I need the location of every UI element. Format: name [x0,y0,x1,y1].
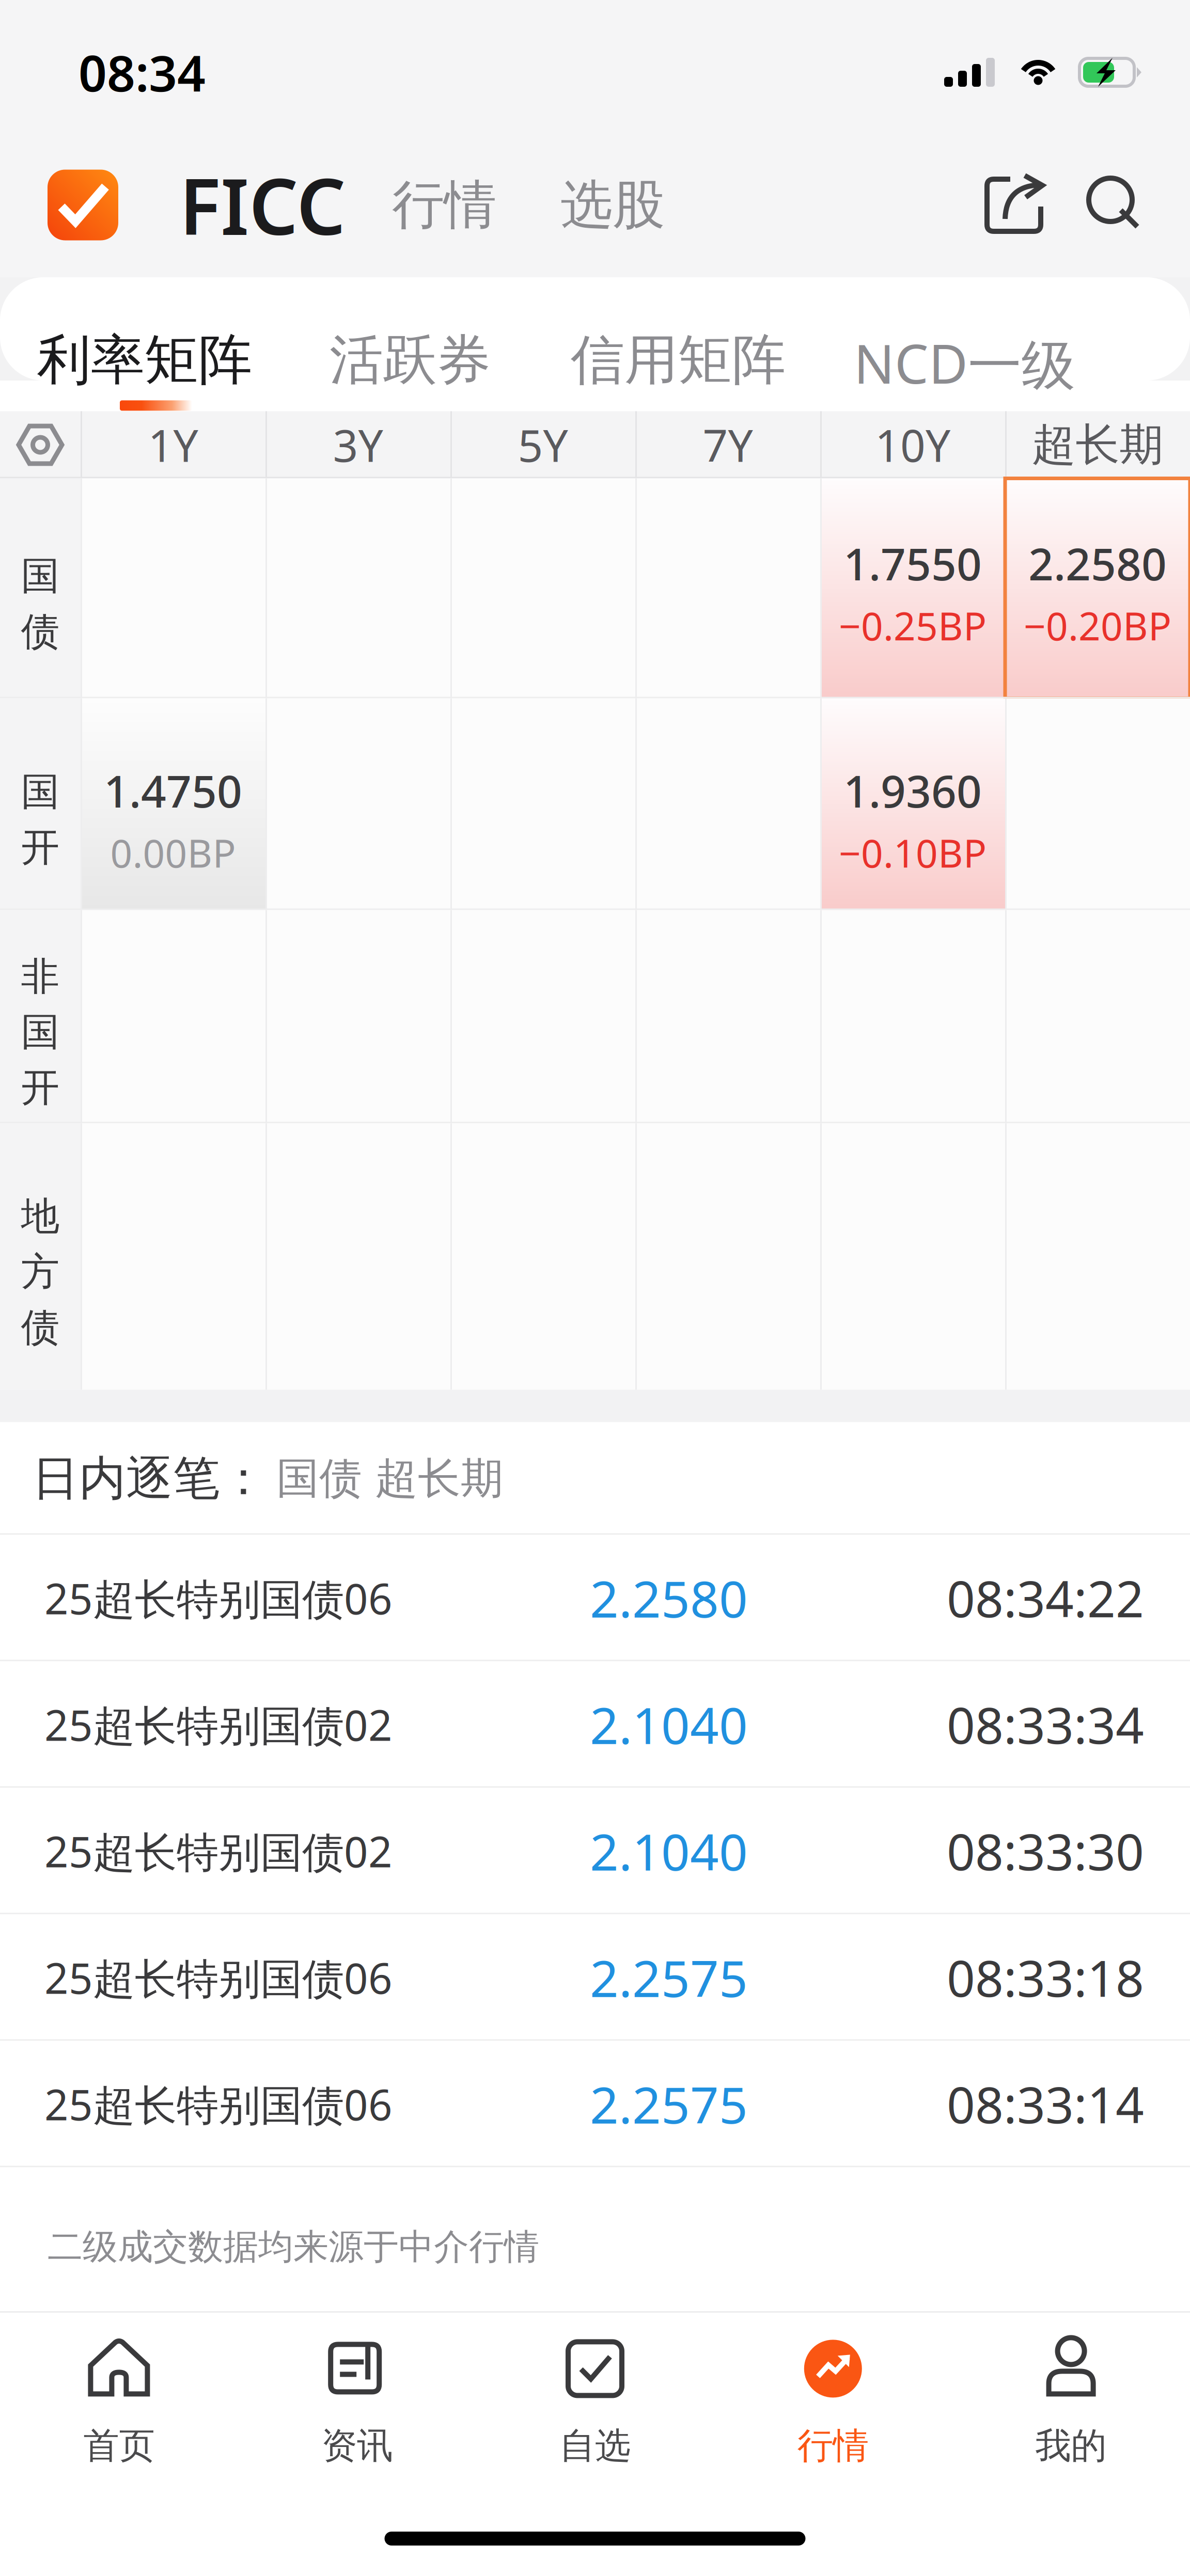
button[interactable]: 自选 [476,2311,714,2469]
staticText: −0.10BP [839,827,987,878]
staticText: 超长期 [1032,418,1163,472]
staticText: 信用矩阵 [571,327,786,393]
staticText: 25超长特别国债06 [44,1950,393,2005]
staticText: 国 [21,768,60,816]
button[interactable]: 资讯 [238,2311,476,2469]
staticText: 25超长特别国债06 [44,2076,393,2132]
staticText: 自选 [559,2424,631,2468]
staticText: 2.1040 [590,1691,748,1758]
staticText: 开 [21,1064,60,1111]
staticText: 方 [21,1248,60,1296]
staticText: 非 [21,953,60,1000]
staticText: 08:34:22 [947,1565,1144,1631]
button[interactable]: 25超长特别国债06 [0,1535,1190,1661]
staticText: 5Y [518,416,568,474]
staticText: 国 [21,1008,60,1056]
button[interactable]: 25超长特别国债02 [0,1661,1190,1788]
staticText: 行情 [797,2424,869,2468]
staticText: 我的 [1035,2424,1107,2468]
staticText: 7Y [703,416,753,474]
staticText: 10Y [875,416,950,474]
staticText: 日内逐笔： [32,1450,267,1507]
button[interactable]: 行情 [714,2311,952,2469]
staticText: 1.4750 [104,761,242,820]
staticText: 08:33:14 [947,2071,1144,2137]
button[interactable]: 我的 [952,2311,1190,2469]
button[interactable]: 首页 [0,2311,238,2469]
staticText: 行情 [392,173,496,237]
button[interactable]: 分享 [975,169,1053,241]
staticText: −0.20BP [1024,600,1171,651]
button[interactable]: 选股 [554,158,671,252]
staticText: FICC [179,154,346,256]
button[interactable]: 利率矩阵 [37,266,252,415]
staticText: 2.2580 [590,1565,748,1631]
staticText: 2.1040 [590,1818,748,1884]
staticText: 3Y [333,416,383,474]
staticText: 债 [21,608,60,655]
staticText: 1Y [148,416,198,474]
staticText: −0.25BP [839,600,987,651]
staticText: NCD一级 [854,327,1075,399]
staticText: 利率矩阵 [37,327,252,393]
staticText: 08:34 [79,39,206,105]
staticText: 资讯 [321,2424,393,2468]
button[interactable]: 25超长特别国债02 [0,1788,1190,1914]
staticText: 25超长特别国债02 [44,1823,393,1879]
staticText: 开 [21,824,60,871]
button[interactable]: 搜索 [1082,171,1150,239]
button[interactable]: 信用矩阵 [571,266,786,415]
staticText: 国债 超长期 [276,1452,504,1505]
staticText: 活跃券 [330,327,491,393]
staticText: 25超长特别国债06 [44,1570,393,1626]
staticText: 国 [21,552,60,600]
staticText: 08:33:30 [947,1818,1144,1884]
button[interactable]: NCD一级 [854,266,1075,420]
staticText: 2.2580 [1028,534,1167,593]
button[interactable]: 25超长特别国债06 [0,1914,1190,2041]
staticText: 1.7550 [843,534,982,593]
staticText: 2.2575 [590,1944,748,2011]
staticText: 08:33:34 [947,1692,1144,1758]
staticText: 二级成交数据均来源于中介行情 [48,2225,539,2268]
staticText: 08:33:18 [947,1945,1144,2011]
staticText: 2.2575 [590,2071,748,2137]
staticText: 首页 [83,2424,155,2468]
staticText: 25超长特别国债02 [44,1697,393,1752]
button[interactable]: 行情 [386,158,503,252]
staticText: 1.9360 [843,761,982,820]
staticText: 债 [21,1304,60,1351]
staticText: 0.00BP [110,827,236,878]
staticText: 选股 [560,173,665,237]
button[interactable]: 活跃券 [330,266,491,415]
button[interactable]: 25超长特别国债06 [0,2041,1190,2167]
staticText: 地 [21,1193,60,1240]
